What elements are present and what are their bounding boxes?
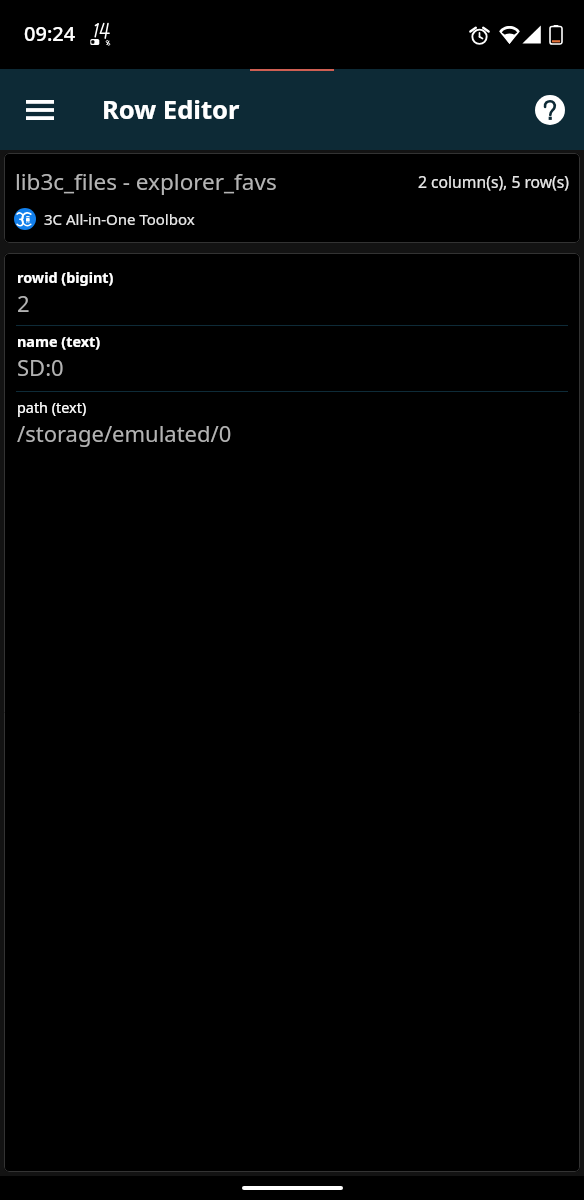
staticText: 3C All-in-One Toolbox — [44, 209, 195, 229]
staticText: path (text) — [17, 398, 87, 418]
button[interactable]: Open navigation drawer — [12, 82, 68, 138]
staticText: Row Editor — [102, 92, 240, 127]
button[interactable]: Help — [526, 86, 574, 134]
button[interactable]: rowid (bigint) — [4, 253, 580, 326]
staticText: lib3c_files - explorer_favs — [15, 166, 277, 197]
staticText: 09:24 — [24, 20, 76, 47]
staticText: 2 column(s), 5 row(s) — [418, 171, 570, 192]
button[interactable]: lib3c_files - explorer_favs — [4, 153, 580, 243]
staticText: 2 — [17, 288, 30, 318]
button[interactable]: name (text) — [4, 326, 580, 392]
staticText: name (text) — [17, 332, 101, 352]
staticText: rowid (bigint) — [17, 268, 114, 288]
staticText: SD:0 — [17, 352, 64, 382]
staticText: /storage/emulated/0 — [17, 418, 232, 448]
button[interactable]: path (text) — [4, 392, 580, 458]
